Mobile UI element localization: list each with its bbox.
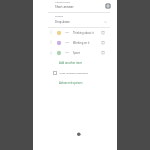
staticText: Thinking about it xyxy=(73,31,94,35)
other: Reorder item xyxy=(49,30,53,34)
staticText: Criteria xyxy=(55,15,63,18)
button[interactable] xyxy=(33,58,117,68)
button[interactable]: Delete item xyxy=(101,50,105,55)
button[interactable] xyxy=(33,18,117,26)
button[interactable] xyxy=(33,2,117,11)
button[interactable]: Insert image xyxy=(106,4,110,8)
staticText: Working on it xyxy=(73,41,90,45)
staticText: Name or title xyxy=(55,0,70,3)
other: Expand xyxy=(104,21,107,23)
staticText: Spent xyxy=(73,51,81,55)
button[interactable] xyxy=(33,77,117,87)
other: Reorder item xyxy=(49,51,53,55)
staticText: Allow multiple selections xyxy=(59,71,88,74)
button[interactable] xyxy=(33,37,117,47)
button[interactable]: Delete item xyxy=(101,30,105,35)
staticText: Short answer xyxy=(55,5,74,9)
button[interactable] xyxy=(33,27,117,37)
button[interactable]: Delete item xyxy=(101,40,105,45)
other: Reorder item xyxy=(49,40,53,44)
staticText: Drop-down xyxy=(55,20,70,24)
button[interactable] xyxy=(33,48,117,58)
staticText: Advanced options xyxy=(59,81,83,85)
staticText: Add another item xyxy=(59,61,83,65)
button[interactable] xyxy=(33,68,117,78)
